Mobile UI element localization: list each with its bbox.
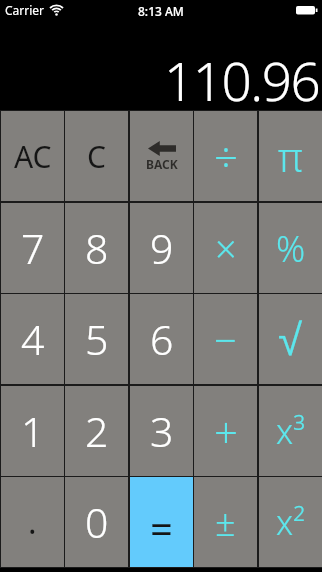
button[interactable]: ±: [194, 477, 257, 567]
staticText: 110.96: [164, 44, 320, 116]
staticText: 5: [85, 311, 109, 367]
button[interactable]: %: [259, 203, 322, 293]
button[interactable]: 8: [65, 203, 128, 293]
staticText: C: [87, 136, 106, 177]
button[interactable]: √: [259, 294, 322, 384]
button[interactable]: 9: [130, 203, 193, 293]
staticText: .: [28, 500, 37, 544]
button[interactable]: C: [65, 111, 128, 201]
button[interactable]: x²: [259, 477, 322, 567]
staticText: −: [214, 312, 237, 366]
button[interactable]: BACK: [130, 111, 193, 201]
button[interactable]: ÷: [194, 111, 257, 201]
staticText: BACK: [146, 156, 178, 172]
staticText: 8: [85, 220, 109, 276]
staticText: +: [214, 403, 238, 460]
button[interactable]: 4: [1, 294, 64, 384]
staticText: ±: [215, 498, 236, 547]
staticText: 3: [150, 403, 174, 459]
staticText: π: [278, 129, 303, 183]
button[interactable]: 6: [130, 294, 193, 384]
button[interactable]: +: [194, 386, 257, 476]
staticText: 4: [21, 311, 45, 367]
staticText: √: [278, 315, 303, 364]
button[interactable]: 7: [1, 203, 64, 293]
staticText: x³: [276, 408, 305, 454]
button[interactable]: .: [1, 477, 64, 567]
staticText: 6: [150, 311, 174, 367]
staticText: %: [276, 224, 306, 273]
staticText: Carrier: [5, 2, 45, 18]
button[interactable]: 1: [1, 386, 64, 476]
staticText: 9: [150, 220, 174, 276]
button[interactable]: 0: [65, 477, 128, 567]
button[interactable]: 2: [65, 386, 128, 476]
staticText: 7: [21, 220, 45, 276]
staticText: ×: [215, 222, 237, 274]
button[interactable]: x³: [259, 386, 322, 476]
staticText: ÷: [214, 128, 238, 185]
button[interactable]: =: [130, 477, 193, 567]
button[interactable]: π: [259, 111, 322, 201]
staticText: 8:13 AM: [138, 3, 184, 19]
button[interactable]: 3: [130, 386, 193, 476]
button[interactable]: 5: [65, 294, 128, 384]
button[interactable]: AC: [1, 111, 64, 201]
button[interactable]: −: [194, 294, 257, 384]
staticText: x²: [276, 499, 305, 545]
staticText: =: [150, 501, 173, 555]
staticText: 2: [85, 403, 109, 459]
staticText: 1: [21, 403, 45, 459]
staticText: 0: [85, 494, 109, 550]
staticText: AC: [14, 136, 52, 177]
button[interactable]: ×: [194, 203, 257, 293]
